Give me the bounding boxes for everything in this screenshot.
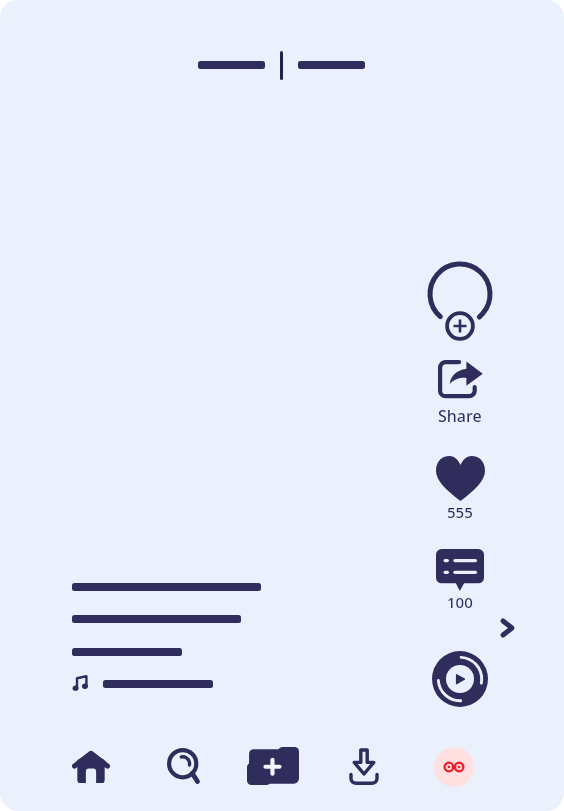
button[interactable]: Next — [494, 614, 522, 642]
button[interactable]: 555 — [428, 456, 492, 526]
staticText: 100 — [447, 592, 473, 612]
button[interactable]: Search — [167, 748, 200, 784]
button[interactable]: Create — [247, 747, 299, 785]
button[interactable] — [198, 48, 265, 82]
button[interactable]: Profile — [430, 743, 478, 791]
button[interactable]: 100 — [428, 549, 492, 617]
button[interactable]: Share — [428, 356, 492, 427]
button[interactable]: Music — [430, 649, 490, 709]
button[interactable]: Inbox — [349, 748, 379, 785]
staticText: Share — [438, 405, 482, 427]
staticText: 555 — [447, 502, 473, 522]
button[interactable]: Follow — [424, 256, 496, 348]
button[interactable] — [298, 48, 365, 82]
button[interactable]: Home — [72, 751, 110, 783]
